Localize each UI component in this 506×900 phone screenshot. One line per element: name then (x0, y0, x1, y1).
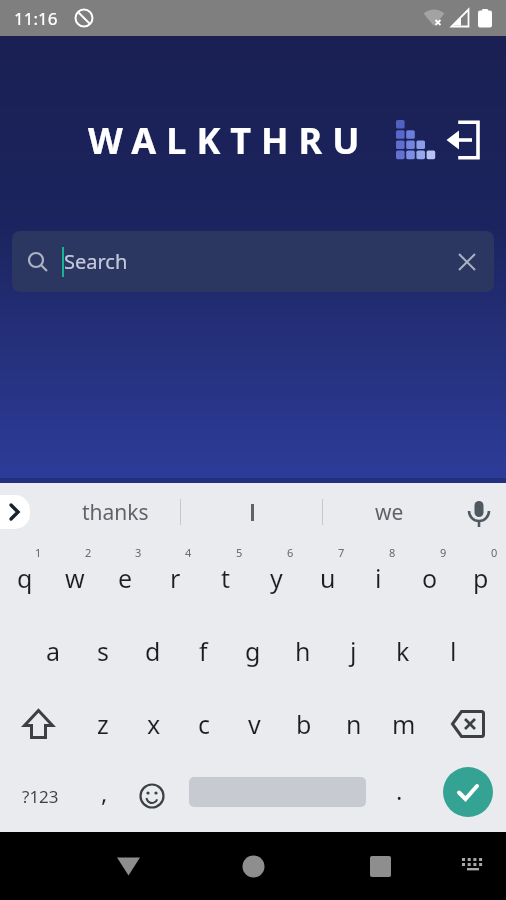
button[interactable] (360, 846, 400, 886)
staticText: t (221, 561, 231, 595)
button[interactable]: h (278, 614, 328, 687)
staticText: r (170, 561, 181, 595)
button[interactable] (429, 687, 506, 760)
staticText: we (375, 498, 404, 527)
button[interactable]: k (378, 614, 428, 687)
button[interactable]: f (178, 614, 228, 687)
staticText: . (396, 774, 403, 807)
button[interactable]: u (302, 541, 353, 614)
button[interactable] (462, 497, 496, 531)
button[interactable]: v (229, 687, 279, 760)
staticText: o (422, 561, 438, 595)
staticText: 3 (135, 545, 142, 560)
staticText: 6 (287, 545, 294, 560)
button[interactable]: b (279, 687, 329, 760)
staticText: z (97, 707, 109, 741)
button[interactable]: q (0, 541, 50, 614)
button[interactable]: r (150, 541, 200, 614)
button[interactable]: Search (12, 231, 494, 292)
button[interactable]: d (128, 614, 178, 687)
button[interactable]: g (228, 614, 278, 687)
button[interactable]: z (77, 687, 128, 760)
staticText: b (296, 707, 312, 741)
button[interactable] (452, 844, 494, 884)
staticText: l (450, 634, 457, 668)
staticText: WALKTHRU (88, 116, 370, 165)
staticText: , (101, 776, 108, 809)
staticText: q (17, 561, 33, 595)
staticText: 0 (491, 545, 498, 560)
button[interactable] (0, 495, 30, 529)
staticText: i (375, 561, 382, 595)
staticText: Search (64, 248, 128, 275)
button[interactable]: . (368, 760, 430, 832)
button[interactable]: c (179, 687, 229, 760)
button[interactable]: n (329, 687, 379, 760)
button[interactable] (233, 846, 273, 886)
staticText: g (245, 634, 261, 668)
staticText: 1 (35, 545, 42, 560)
button[interactable]: e (100, 541, 150, 614)
staticText: y (270, 561, 283, 595)
staticText: h (295, 634, 311, 668)
button[interactable] (128, 760, 176, 832)
button[interactable] (176, 760, 368, 832)
button[interactable] (430, 760, 506, 832)
button[interactable] (108, 846, 148, 886)
button[interactable]: i (353, 541, 404, 614)
button[interactable] (0, 687, 77, 760)
staticText: 2 (85, 545, 92, 560)
staticText: m (392, 707, 416, 741)
button[interactable]: m (379, 687, 429, 760)
staticText: w (65, 561, 85, 595)
staticText: f (199, 634, 208, 668)
button[interactable]: l (428, 614, 478, 687)
staticText: k (396, 634, 410, 668)
button[interactable]: we (345, 483, 433, 541)
staticText: ?123 (22, 785, 59, 808)
button[interactable]: thanks (55, 483, 175, 541)
staticText: thanks (82, 498, 149, 527)
staticText: j (350, 634, 357, 668)
staticText: v (248, 707, 261, 741)
staticText: 9 (440, 545, 447, 560)
button[interactable]: o (404, 541, 455, 614)
button[interactable]: a (28, 614, 78, 687)
staticText: d (145, 634, 161, 668)
button[interactable]: t (200, 541, 251, 614)
button[interactable] (444, 120, 484, 160)
button[interactable]: ?123 (0, 760, 80, 832)
staticText: 5 (236, 545, 243, 560)
staticText: 11:16 (14, 7, 58, 30)
button[interactable]: y (251, 541, 302, 614)
button[interactable]: s (78, 614, 128, 687)
staticText: 8 (389, 545, 396, 560)
staticText: e (118, 561, 133, 595)
button[interactable]: j (328, 614, 378, 687)
button[interactable] (205, 483, 300, 541)
staticText: a (46, 634, 61, 668)
staticText: 4 (185, 545, 192, 560)
staticText: s (97, 634, 109, 668)
staticText: u (320, 561, 336, 595)
button[interactable]: x (128, 687, 179, 760)
button[interactable]: p (455, 541, 506, 614)
button[interactable]: w (50, 541, 100, 614)
staticText: c (198, 707, 211, 741)
staticText: n (346, 707, 362, 741)
button[interactable]: , (80, 760, 128, 832)
staticText: x (147, 707, 161, 741)
staticText: p (473, 561, 489, 595)
staticText: 7 (338, 545, 345, 560)
